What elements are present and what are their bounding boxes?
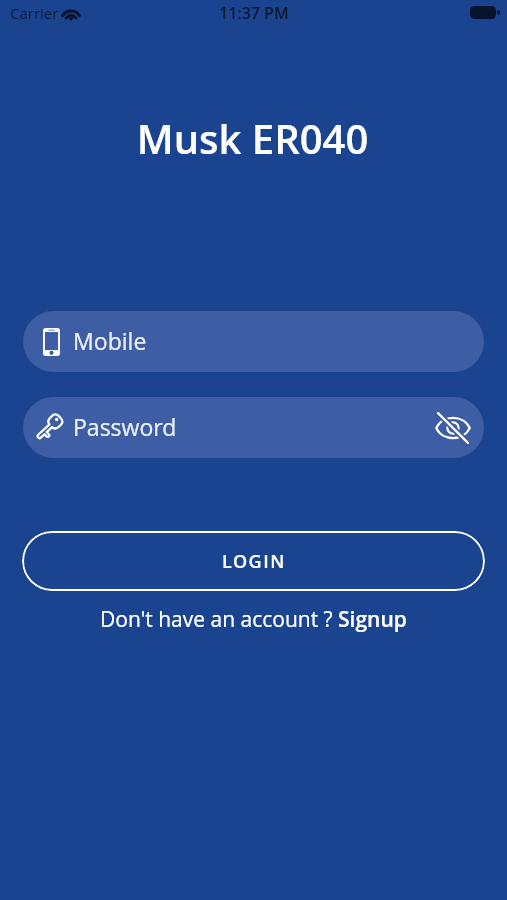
- staticText: LOGIN: [222, 549, 286, 574]
- button[interactable]: Show password: [435, 410, 471, 446]
- button[interactable]: Mobile: [23, 311, 484, 372]
- staticText: Carrier: [10, 3, 59, 23]
- staticText: Don't have an account ? Signup: [100, 605, 407, 634]
- button[interactable]: Don't have an account ? Signup: [96, 603, 411, 636]
- staticText: Mobile: [73, 325, 147, 356]
- staticText: Musk ER040: [0, 111, 506, 165]
- staticText: 11:37 PM: [219, 2, 289, 24]
- button[interactable]: LOGIN: [22, 531, 485, 591]
- button[interactable]: Password: [23, 397, 484, 458]
- staticText: Password: [73, 411, 177, 442]
